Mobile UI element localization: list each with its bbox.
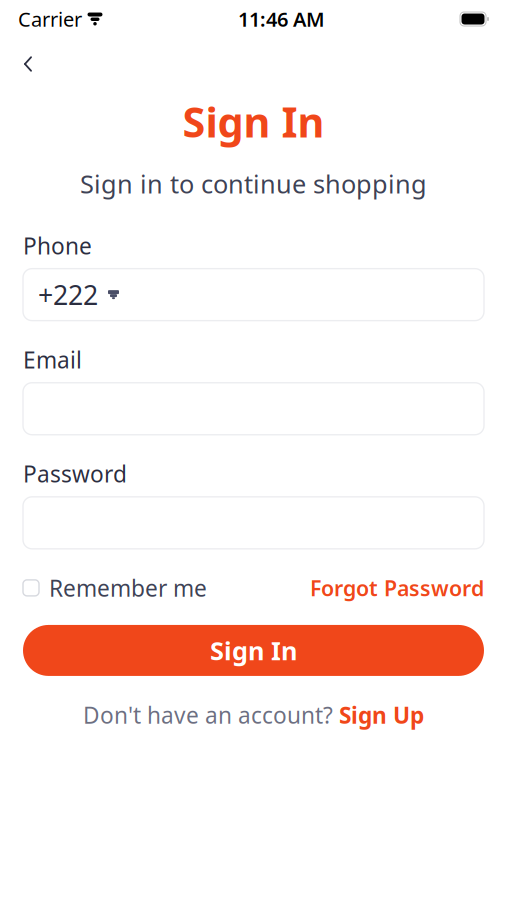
staticText: Sign In: [210, 634, 297, 667]
staticText: Remember me: [49, 573, 207, 603]
staticText: Sign In: [182, 94, 324, 149]
button[interactable]: Don't have an account?: [83, 696, 424, 734]
staticText: Sign Up: [339, 700, 424, 730]
button[interactable]: Forgot Password: [310, 568, 484, 608]
staticText: Password: [23, 459, 127, 489]
button[interactable]: +222: [23, 269, 484, 321]
staticText: Phone: [23, 230, 92, 261]
button[interactable]: Back: [8, 44, 48, 84]
staticText: +222: [38, 277, 98, 312]
button[interactable]: Sign In: [23, 625, 484, 676]
staticText: Carrier: [18, 6, 82, 32]
staticText: Email: [23, 345, 82, 375]
staticText: Don't have an account?: [83, 700, 333, 730]
button[interactable]: Remember me: [23, 567, 207, 609]
staticText: 11:46 AM: [238, 6, 325, 32]
staticText: Sign in to continue shopping: [80, 167, 427, 200]
staticText: Forgot Password: [310, 574, 484, 602]
